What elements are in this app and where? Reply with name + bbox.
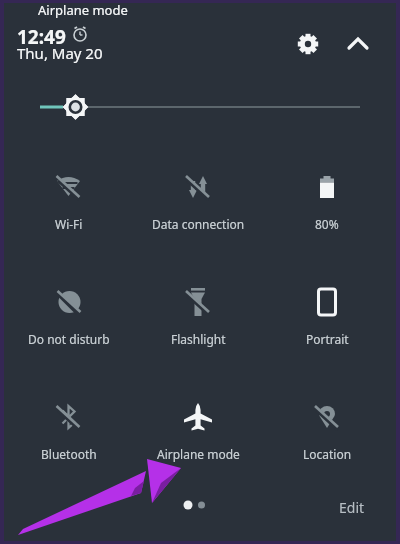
staticText: Portrait [306,331,349,347]
button[interactable]: 80% [262,172,392,232]
staticText: Airplane mode [38,1,128,19]
button[interactable]: Airplane mode [133,402,263,462]
button[interactable]: 12:49 [17,24,66,50]
staticText: Flashlight [171,331,226,347]
button[interactable]: Thu, May 20 [17,43,103,63]
staticText: Location [303,446,352,462]
staticText: Airplane mode [157,446,240,462]
button[interactable]: Portrait [262,287,392,347]
staticText: Do not disturb [28,331,110,347]
staticText: Bluetooth [41,446,97,462]
button[interactable]: Location [262,402,392,462]
staticText: Edit [339,498,365,517]
button[interactable]: Bluetooth [4,402,134,462]
button[interactable]: Wi-Fi [4,172,134,232]
staticText: Data connection [152,216,245,232]
button[interactable]: Edit [330,494,374,520]
staticText: Wi-Fi [55,216,83,232]
button[interactable]: Data connection [133,172,263,232]
button[interactable] [347,36,369,52]
staticText: 80% [315,216,339,232]
button[interactable]: Flashlight [133,287,263,347]
button[interactable] [296,32,320,56]
button[interactable]: Do not disturb [4,287,134,347]
